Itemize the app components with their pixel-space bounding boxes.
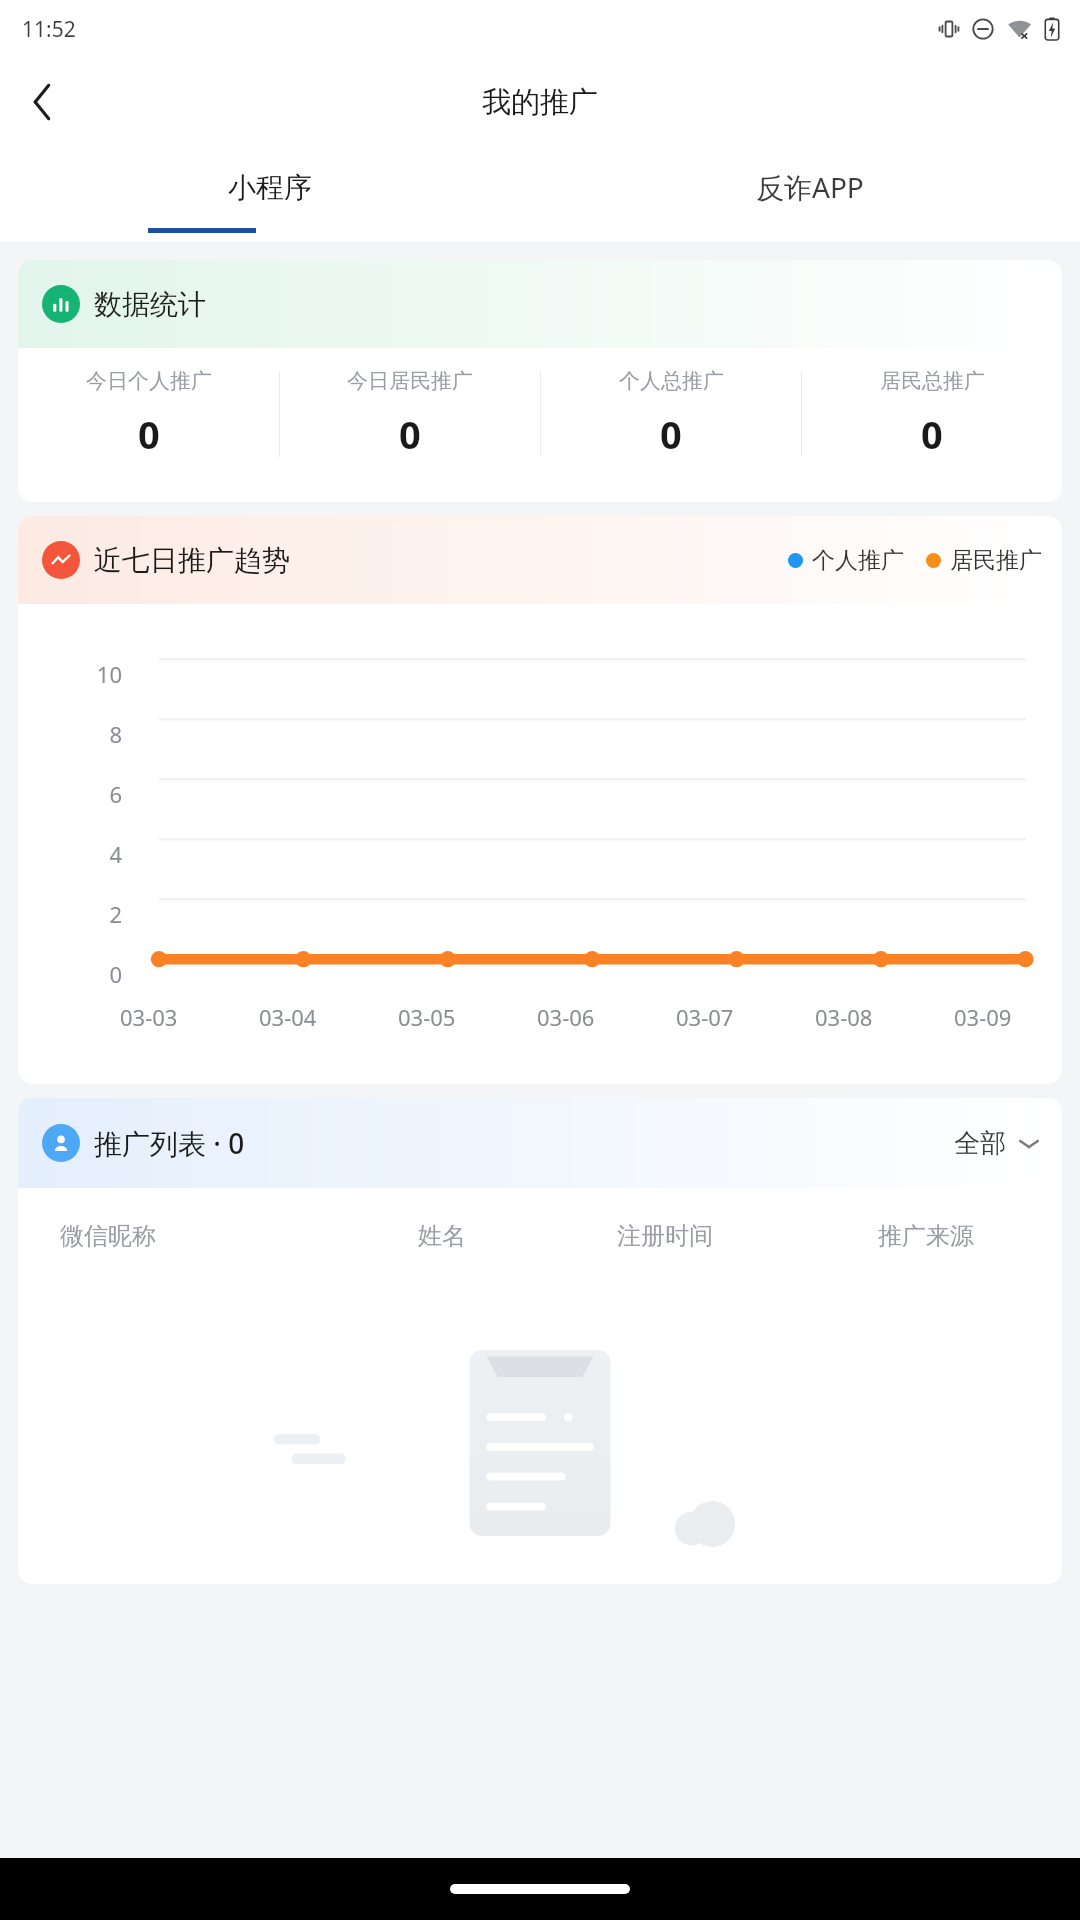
staticText: 居民总推广 (880, 368, 985, 394)
staticText: 数据统计 (94, 287, 206, 322)
staticText: 微信昵称 (60, 1221, 156, 1251)
button[interactable]: 小程序 (0, 146, 540, 228)
staticText: 姓名 (418, 1221, 466, 1251)
staticText: 0 (399, 408, 421, 460)
button[interactable]: Back (14, 73, 72, 131)
button[interactable]: 反诈APP (540, 146, 1080, 228)
staticText: 03-07 (676, 1002, 734, 1032)
staticText: 推广来源 (878, 1221, 974, 1251)
staticText: 4 (18, 839, 122, 869)
staticText: 注册时间 (617, 1221, 713, 1251)
staticText: 10 (18, 659, 122, 689)
staticText: 全部 (954, 1127, 1006, 1160)
staticText: 0 (921, 408, 943, 460)
staticText: 03-09 (954, 1002, 1012, 1032)
staticText: 0 (660, 408, 682, 460)
staticText: 03-05 (398, 1002, 456, 1032)
staticText: 个人总推广 (619, 368, 724, 394)
staticText: 推广列表 · 0 (94, 1124, 245, 1162)
staticText: 03-04 (259, 1002, 317, 1032)
staticText: 今日个人推广 (86, 368, 212, 394)
staticText: 03-08 (815, 1002, 873, 1032)
staticText: 今日居民推广 (347, 368, 473, 394)
staticText: 我的推广 (482, 84, 598, 121)
staticText: 居民推广 (950, 546, 1042, 575)
staticText: 2 (18, 899, 122, 929)
staticText: 个人推广 (812, 546, 904, 575)
button[interactable]: 全部 (954, 1127, 1040, 1160)
staticText: 6 (18, 779, 122, 809)
staticText: 03-03 (120, 1002, 178, 1032)
staticText: 8 (18, 719, 122, 749)
staticText: 反诈APP (756, 168, 864, 206)
staticText: 0 (138, 408, 160, 460)
staticText: 小程序 (228, 170, 312, 205)
staticText: 11:52 (22, 15, 76, 44)
staticText: 03-06 (537, 1002, 595, 1032)
staticText: 0 (18, 959, 122, 989)
staticText: 近七日推广趋势 (94, 543, 290, 578)
